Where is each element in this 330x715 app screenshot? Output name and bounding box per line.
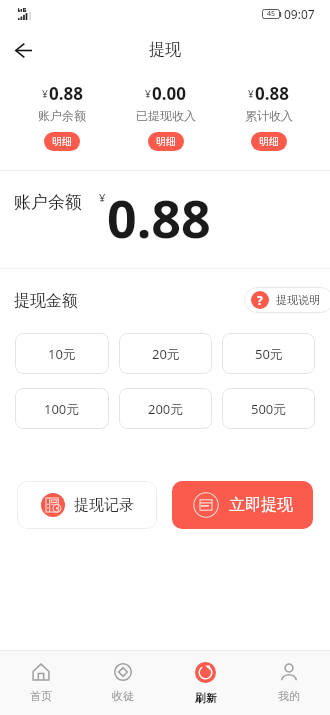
staticText: 提现说明 (276, 293, 320, 307)
staticText: 提现 (149, 40, 181, 60)
staticText: 账户余额 (38, 108, 86, 123)
staticText: 100元 (44, 400, 80, 418)
staticText: 首页 (30, 689, 52, 703)
staticText: 明细 (52, 135, 72, 148)
button[interactable]: 明细 (148, 132, 184, 151)
button[interactable]: Back (4, 31, 42, 69)
button[interactable]: 20元 (119, 333, 212, 374)
button[interactable]: 首页 (0, 651, 82, 715)
staticText: 收徒 (112, 689, 134, 703)
staticText: 0.88 (255, 82, 289, 105)
button[interactable]: 200元 (119, 388, 212, 429)
button[interactable]: 500元 (222, 388, 315, 429)
staticText: 累计收入 (245, 108, 293, 123)
staticText: 10元 (48, 345, 76, 363)
staticText: 09:07 (284, 6, 315, 22)
button[interactable]: 明细 (251, 132, 287, 151)
staticText: 500元 (251, 400, 287, 418)
button[interactable]: 立即提现 (172, 481, 313, 529)
staticText: 0.88 (107, 182, 211, 253)
staticText: ¥ (145, 87, 151, 101)
staticText: 20元 (152, 345, 180, 363)
staticText: 45 (267, 9, 276, 19)
staticText: 50元 (255, 345, 283, 363)
staticText: 提现记录 (74, 496, 134, 515)
staticText: ¥ (248, 87, 254, 101)
button[interactable]: 100元 (15, 388, 109, 429)
staticText: ¥ (42, 87, 48, 101)
staticText: ? (257, 292, 263, 308)
staticText: 刷新 (195, 691, 217, 705)
staticText: 提现金额 (14, 291, 78, 311)
button[interactable]: 10元 (15, 333, 109, 374)
staticText: 立即提现 (229, 495, 293, 515)
button[interactable]: 我的 (247, 651, 330, 715)
button[interactable]: 50元 (222, 333, 315, 374)
button[interactable]: 收徒 (82, 651, 164, 715)
button[interactable]: 提现记录 (17, 481, 157, 529)
staticText: 明细 (156, 135, 176, 148)
staticText: ¥ (99, 190, 106, 205)
staticText: 我的 (278, 689, 300, 703)
button[interactable]: 刷新 (164, 651, 247, 715)
button[interactable]: 明细 (44, 132, 80, 151)
staticText: 0.88 (49, 82, 83, 105)
staticText: 已提现收入 (136, 108, 196, 123)
button[interactable]: ? (244, 287, 330, 313)
staticText: 0.00 (152, 82, 186, 105)
staticText: 明细 (259, 135, 279, 148)
staticText: 账户余额 (14, 192, 82, 213)
staticText: 200元 (148, 400, 184, 418)
